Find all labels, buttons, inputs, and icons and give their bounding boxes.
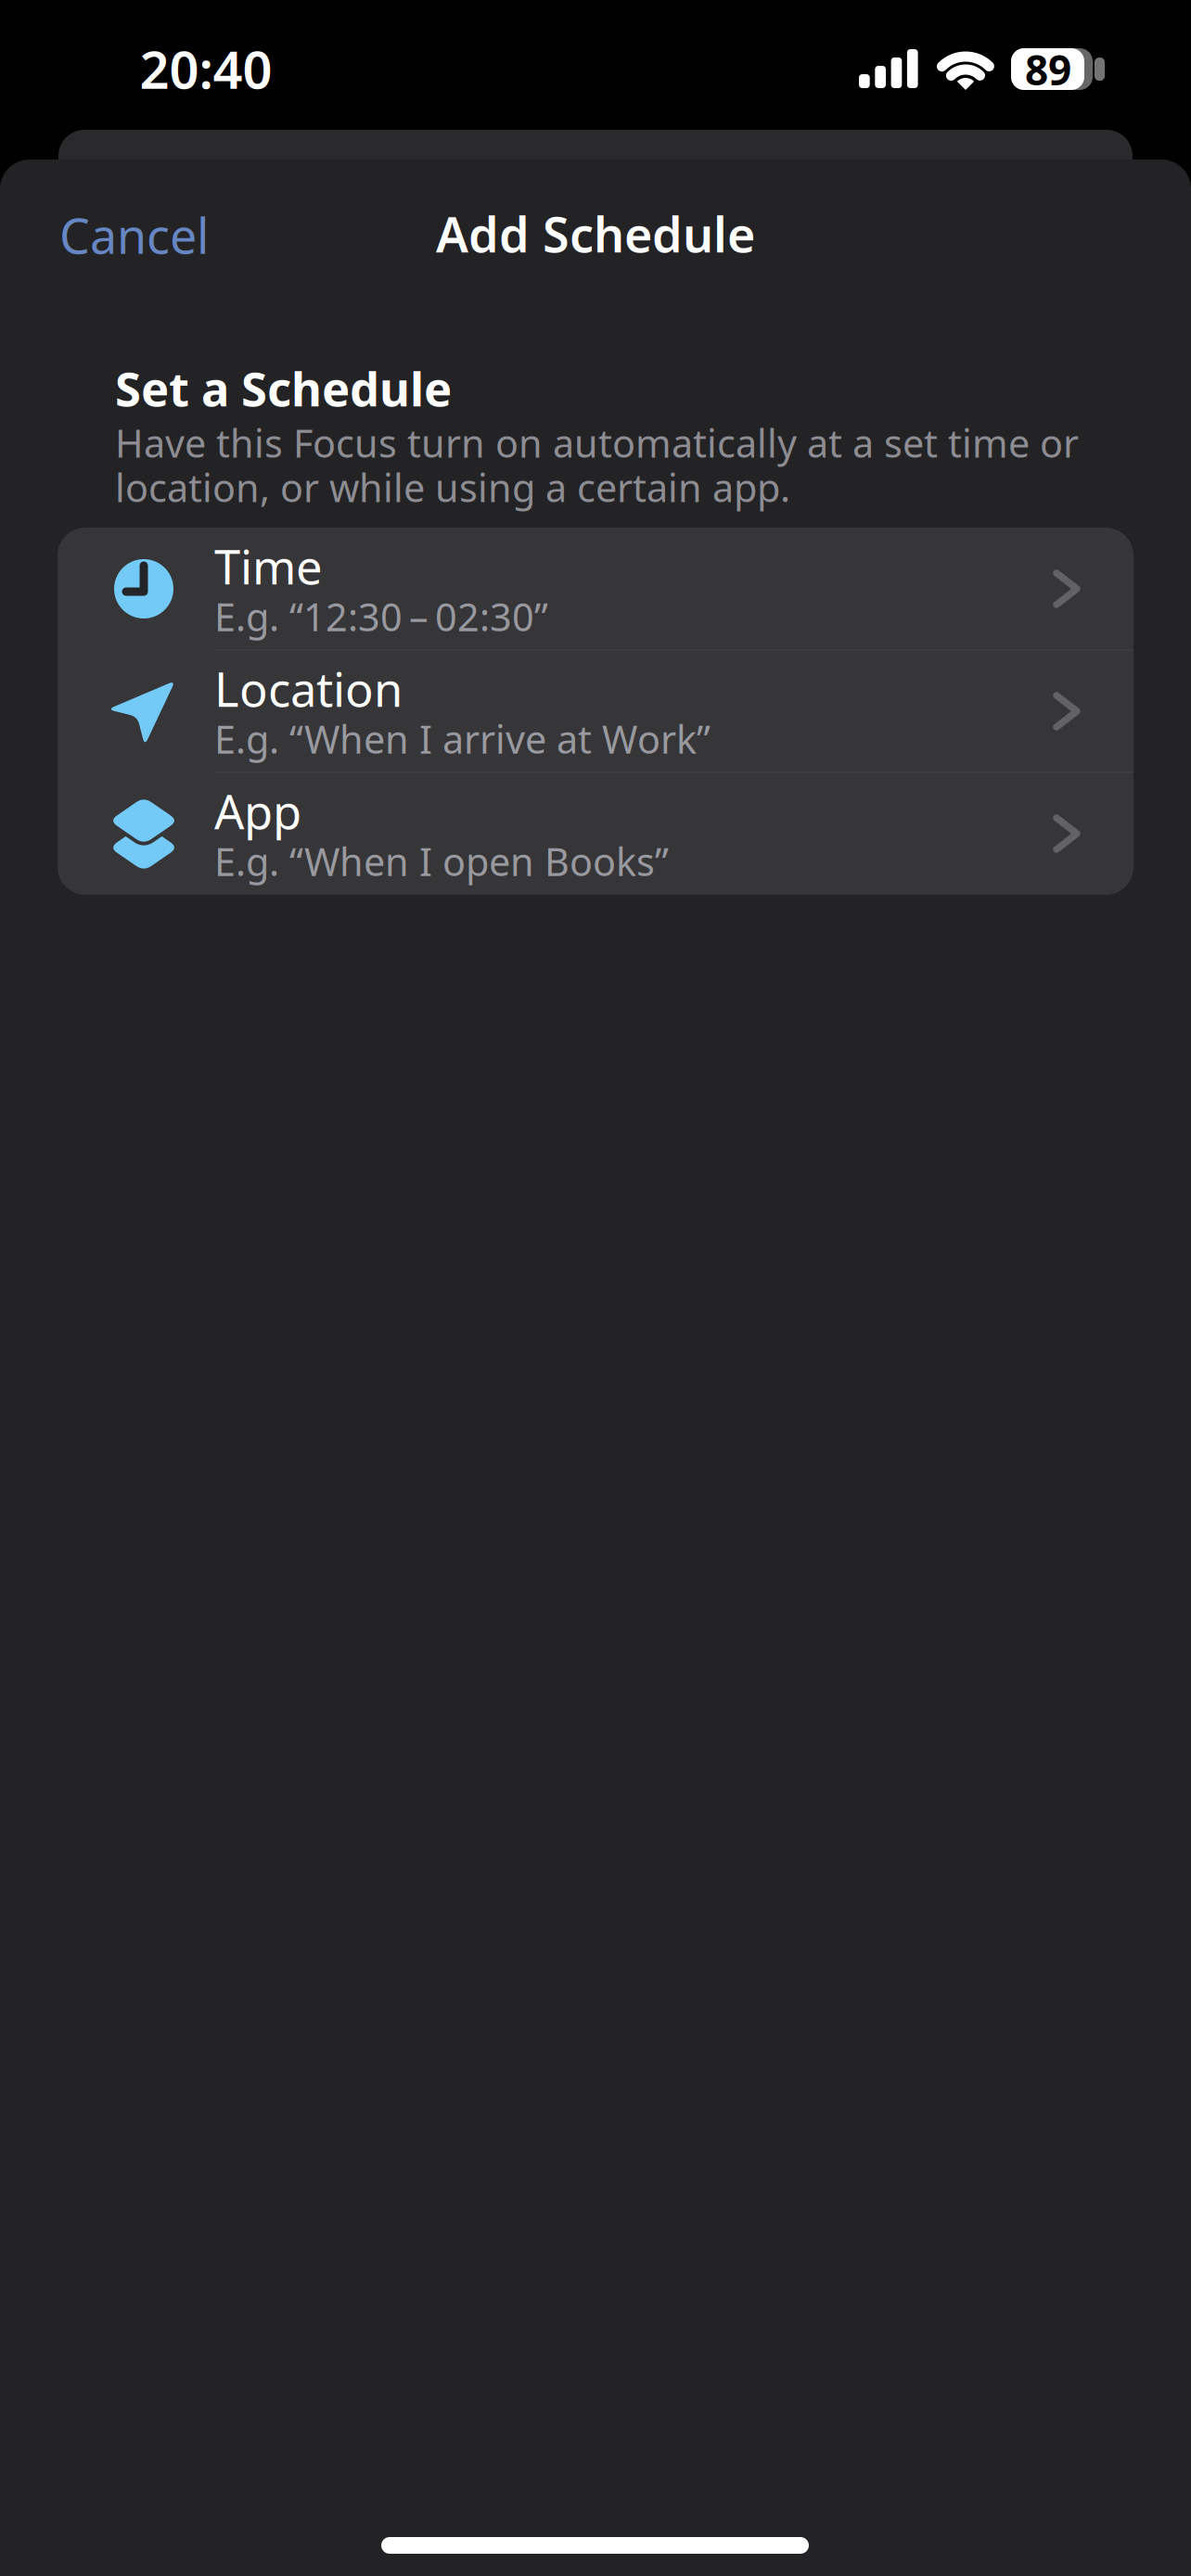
staticText: Add Schedule (436, 202, 755, 266)
staticText: location, or while using a certain app. (115, 462, 790, 513)
staticText: Time (214, 535, 323, 597)
staticText: E.g. “12:30 – 02:30” (214, 591, 548, 642)
staticText: Set a Schedule (115, 357, 452, 419)
staticText: 89 (1025, 42, 1071, 97)
button[interactable]: App (58, 772, 1133, 895)
staticText: App (214, 780, 301, 842)
staticText: E.g. “When I arrive at Work” (214, 713, 711, 764)
staticText: Cancel (59, 203, 209, 267)
staticText: Location (214, 657, 403, 720)
staticText: Have this Focus turn on automatically at… (115, 417, 1079, 468)
button[interactable]: Cancel (59, 203, 209, 267)
staticText: 20:40 (140, 34, 272, 103)
button[interactable]: Time (58, 528, 1133, 650)
staticText: E.g. “When I open Books” (214, 836, 669, 887)
button[interactable]: Location (58, 650, 1133, 772)
